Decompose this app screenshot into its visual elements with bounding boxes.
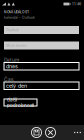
staticText: dnes xyxy=(6,63,18,69)
staticText: NOVÁ UDÁLOST xyxy=(4,10,29,14)
staticText: Čas xyxy=(4,77,14,82)
button[interactable]: Předmět xyxy=(4,26,79,34)
button[interactable]: celý den xyxy=(4,82,79,89)
staticText: celý den xyxy=(6,82,27,89)
button[interactable]: Místo konání xyxy=(4,41,79,49)
staticText: Datum xyxy=(4,57,19,63)
button[interactable]: Save xyxy=(31,127,41,137)
staticText: Místo konání xyxy=(6,44,27,47)
staticText: Předmět xyxy=(6,28,19,32)
button[interactable]: dnes xyxy=(4,62,79,70)
staticText: 11:46 xyxy=(72,2,81,6)
button[interactable]: další podrobnosti xyxy=(4,99,37,106)
staticText: kalendář – Outlook xyxy=(4,15,35,20)
staticText: další podrobnosti xyxy=(7,97,34,108)
button[interactable]: Cancel xyxy=(45,127,55,137)
button[interactable]: More options xyxy=(71,125,84,140)
